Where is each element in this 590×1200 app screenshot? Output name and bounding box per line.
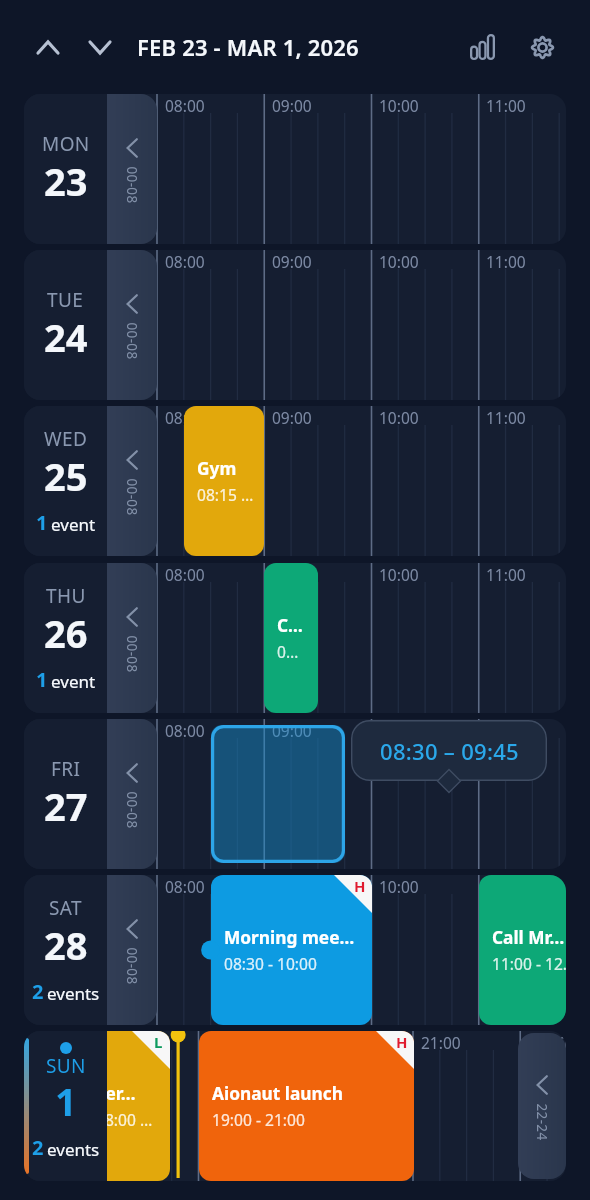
- staticText: event: [51, 670, 96, 693]
- staticText: 11:00 - 12…: [492, 953, 566, 974]
- staticText: 08:30 - 10:00: [224, 953, 317, 974]
- staticText: 11:00: [486, 251, 526, 272]
- staticText: 08:00: [165, 876, 205, 897]
- staticText: 28: [44, 919, 88, 971]
- button[interactable]: C…: [264, 563, 318, 713]
- button[interactable]: [211, 725, 345, 863]
- staticText: 2: [32, 978, 44, 1005]
- staticText: 08:30 – 09:45: [380, 736, 519, 766]
- staticText: events: [47, 1138, 100, 1161]
- staticText: 0…: [277, 641, 299, 662]
- staticText: 10:00: [379, 95, 419, 116]
- staticText: Gym: [197, 457, 237, 481]
- staticText: 22-24: [533, 1092, 551, 1152]
- staticText: 00-08: [123, 155, 141, 215]
- staticText: 00-08: [123, 780, 141, 840]
- staticText: 11:00: [486, 407, 526, 428]
- staticText: MON: [42, 131, 90, 157]
- staticText: WED: [44, 426, 88, 452]
- button[interactable]: 08:00: [24, 875, 566, 1025]
- staticText: L: [154, 1032, 163, 1052]
- staticText: FRI: [51, 756, 81, 782]
- button[interactable]: Previous week: [26, 25, 70, 69]
- button[interactable]: Expand 00-08: [107, 875, 157, 1025]
- button[interactable]: Expand 22-24: [518, 1033, 566, 1179]
- staticText: 18:00 …: [96, 1109, 153, 1130]
- staticText: 1: [36, 666, 48, 693]
- button[interactable]: Next week: [78, 25, 122, 69]
- staticText: FEB 23 - MAR 1, 2026: [137, 32, 359, 62]
- staticText: 00-08: [123, 311, 141, 371]
- staticText: Ser…: [96, 1082, 136, 1106]
- button[interactable]: Morning mee…: [211, 875, 372, 1025]
- staticText: 11:00: [486, 720, 526, 741]
- staticText: 1: [36, 509, 48, 536]
- staticText: H: [354, 876, 366, 896]
- staticText: 00-08: [123, 936, 141, 996]
- button[interactable]: 19:00: [24, 1031, 566, 1181]
- staticText: 00-08: [123, 467, 141, 527]
- staticText: 10:00: [379, 251, 419, 272]
- staticText: H: [396, 1032, 408, 1052]
- staticText: 2: [32, 1134, 44, 1161]
- staticText: Call Mr…: [492, 926, 565, 950]
- staticText: 08:15 …: [197, 484, 254, 505]
- staticText: 21:00: [421, 1032, 461, 1053]
- staticText: 19:00 - 21:00: [212, 1109, 305, 1130]
- staticText: 09:00: [272, 407, 312, 428]
- staticText: 24: [44, 311, 88, 363]
- button[interactable]: 08:00: [24, 94, 566, 244]
- staticText: 00-08: [123, 624, 141, 684]
- staticText: 08:00: [165, 251, 205, 272]
- staticText: 11:00: [486, 564, 526, 585]
- staticText: 08:00: [165, 564, 205, 585]
- button[interactable]: Statistics: [460, 25, 504, 69]
- button[interactable]: 08:30 – 09:45: [351, 720, 547, 781]
- staticText: TUE: [47, 287, 84, 313]
- staticText: 08:00: [165, 720, 205, 741]
- staticText: SUN: [46, 1053, 86, 1079]
- staticText: 09:00: [272, 720, 312, 741]
- staticText: 09:00: [272, 251, 312, 272]
- button[interactable]: Expand 00-08: [107, 250, 157, 400]
- button[interactable]: 08:00: [24, 406, 566, 556]
- staticText: C…: [277, 614, 303, 638]
- staticText: 22:00: [528, 1032, 566, 1053]
- staticText: Aionaut launch: [212, 1082, 343, 1106]
- button[interactable]: Expand 00-08: [107, 563, 157, 713]
- staticText: events: [47, 982, 100, 1005]
- button[interactable]: Expand 00-08: [107, 94, 157, 244]
- button[interactable]: Expand 00-08: [107, 719, 157, 869]
- staticText: 09:00: [272, 95, 312, 116]
- staticText: 08:00: [165, 95, 205, 116]
- button[interactable]: Expand 00-08: [107, 406, 157, 556]
- staticText: 10:00: [379, 720, 419, 741]
- button[interactable]: Gym: [184, 406, 264, 556]
- staticText: 26: [44, 607, 88, 659]
- button[interactable]: Settings: [520, 25, 564, 69]
- button[interactable]: 08:00: [24, 250, 566, 400]
- button[interactable]: 08:00: [24, 719, 566, 869]
- button[interactable]: Call Mr…: [479, 875, 566, 1025]
- button[interactable]: Aionaut launch: [199, 1031, 414, 1181]
- staticText: THU: [46, 583, 86, 609]
- staticText: 10:00: [379, 564, 419, 585]
- staticText: 11:00: [486, 95, 526, 116]
- staticText: Morning mee…: [224, 926, 355, 950]
- staticText: 1: [55, 1075, 77, 1127]
- staticText: 10:00: [379, 876, 419, 897]
- staticText: 25: [44, 450, 88, 502]
- staticText: event: [51, 513, 96, 536]
- staticText: 10:00: [379, 407, 419, 428]
- staticText: 08:00: [165, 407, 205, 428]
- staticText: 27: [44, 780, 88, 832]
- button[interactable]: 08:00: [24, 563, 566, 713]
- button[interactable]: Ser…: [83, 1031, 170, 1181]
- staticText: 23: [44, 155, 88, 207]
- staticText: SAT: [49, 895, 83, 921]
